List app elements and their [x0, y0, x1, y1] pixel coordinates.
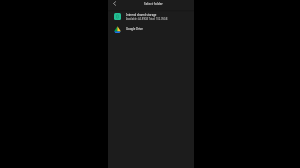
button[interactable]: Back: [111, 0, 118, 7]
button[interactable]: Internal shared storage: [108, 10, 194, 23]
staticText: Select folder: [144, 2, 163, 6]
staticText: Available: 44.89GB Total: 102.05GB: [126, 17, 168, 20]
staticText: Google Drive: [126, 27, 143, 31]
staticText: Internal shared storage: [126, 13, 157, 17]
button[interactable]: Google Drive: [108, 23, 194, 35]
